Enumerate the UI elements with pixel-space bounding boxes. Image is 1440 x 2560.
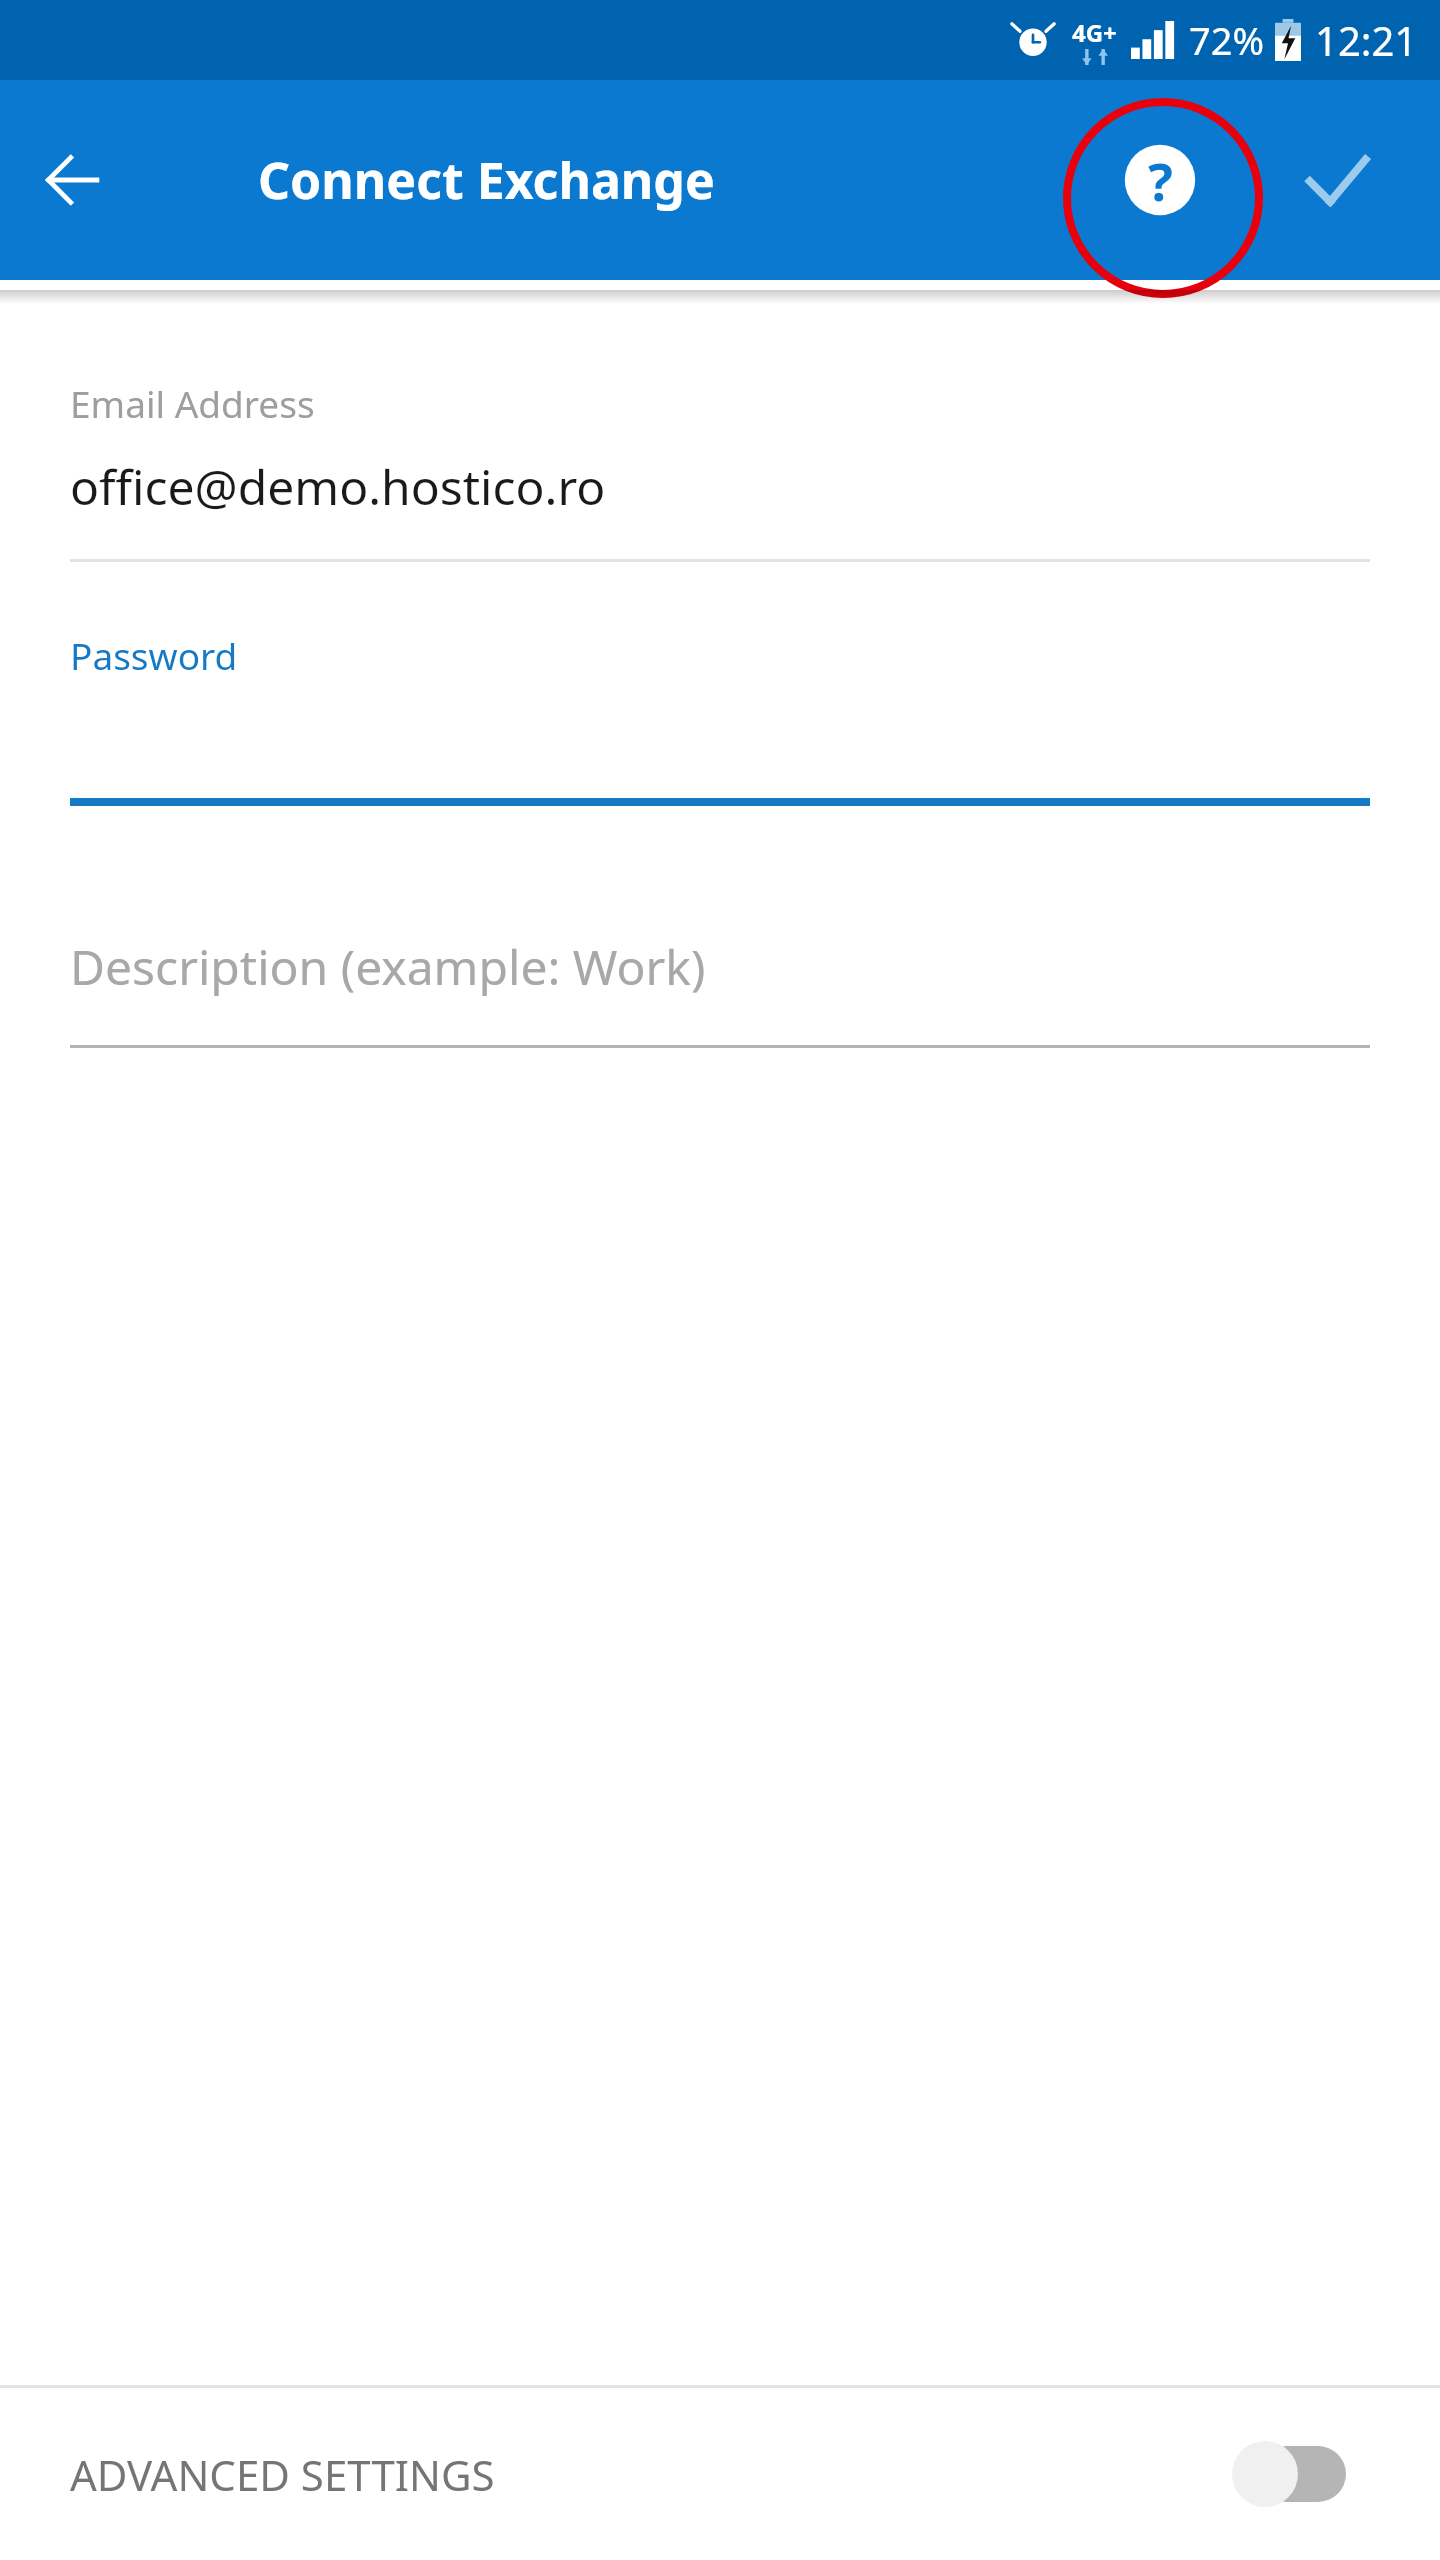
staticText: Email Address xyxy=(70,378,315,428)
staticText: ? xyxy=(1148,145,1173,216)
staticText: Connect Exchange xyxy=(258,146,715,214)
staticText: Password xyxy=(70,630,238,680)
staticText: 4G+ xyxy=(1072,16,1117,49)
staticText: Description (example: Work) xyxy=(70,934,706,999)
button[interactable]: Done xyxy=(1272,115,1402,245)
button[interactable]: Email Address xyxy=(0,378,1440,562)
button[interactable]: Password xyxy=(0,630,1440,806)
staticText: 12:21 xyxy=(1315,13,1418,67)
button[interactable]: Help xyxy=(1090,110,1230,250)
staticText: office@demo.hostico.ro xyxy=(70,454,606,519)
button[interactable]: ADVANCED SETTINGS xyxy=(0,2388,1440,2560)
button[interactable]: Description (example: Work) xyxy=(0,934,1440,1048)
staticText: ADVANCED SETTINGS xyxy=(70,2446,495,2503)
button[interactable]: Back xyxy=(28,135,118,225)
button[interactable]: Advanced settings toggle xyxy=(1232,2434,1352,2514)
staticText: 72% xyxy=(1189,14,1265,66)
